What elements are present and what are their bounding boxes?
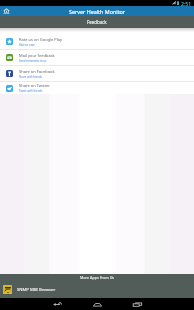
staticText: Mail your feedback [19,53,55,58]
button[interactable]: Share on Twitter [0,82,194,94]
button[interactable]: Home [1,6,12,16]
button[interactable]: Share on Facebook [0,66,194,81]
staticText: Feedback [87,19,107,25]
button[interactable]: Recent apps [132,298,142,310]
staticText: Share on Facebook [19,69,55,74]
staticText: Send comments to us [19,59,47,63]
staticText: 2:51 [181,0,192,6]
staticText: Share with friends [19,75,42,79]
staticText: Rate us now [19,43,35,47]
button[interactable]: Mail your feedback [0,50,194,65]
staticText: More Apps From Us [80,275,115,280]
staticText: Tweet with friends [19,89,43,93]
button[interactable]: Back [52,298,62,310]
button[interactable]: Home [92,298,102,310]
staticText: Share on Twitter [19,83,50,88]
staticText: Server Health Monitor [69,8,126,15]
staticText: Rate us on Google Play [19,37,63,42]
button[interactable]: SNMP MIB Browser [0,281,194,298]
staticText: SNMP MIB Browser [17,287,56,293]
button[interactable]: Rate us on Google Play [0,34,194,49]
